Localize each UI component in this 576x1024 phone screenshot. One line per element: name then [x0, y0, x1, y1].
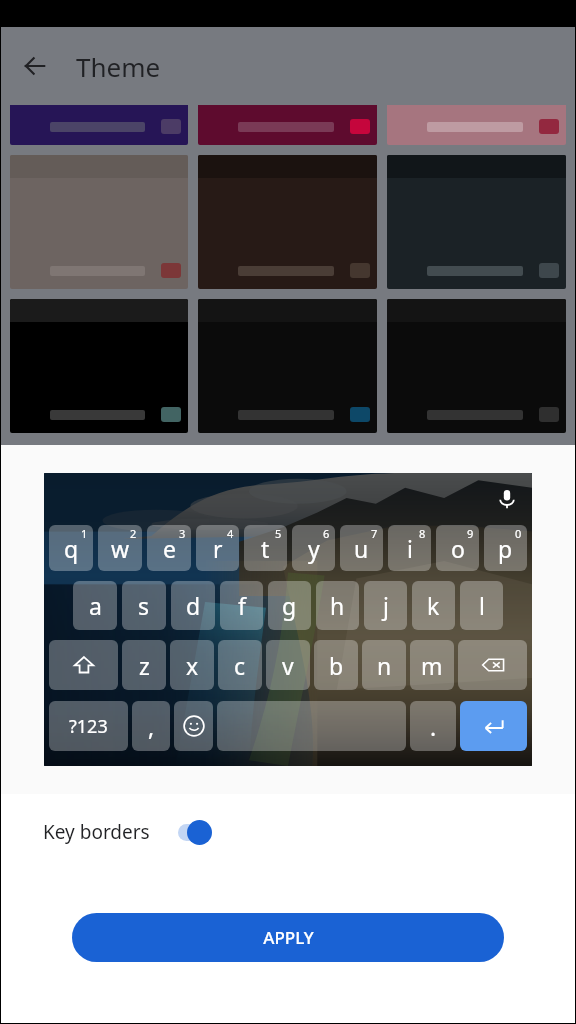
staticText: 7	[371, 526, 378, 541]
staticText: t	[261, 533, 270, 564]
staticText: 5	[275, 526, 282, 541]
button[interactable]: p	[484, 525, 527, 571]
staticText: 9	[467, 526, 474, 541]
button[interactable]: APPLY	[72, 913, 504, 962]
staticText: 8	[419, 526, 426, 541]
button[interactable]: Back	[11, 42, 59, 90]
button[interactable]: Shift	[49, 640, 118, 690]
button[interactable]: v	[266, 640, 310, 690]
button[interactable]: y	[292, 525, 335, 571]
staticText: i	[407, 533, 413, 564]
button[interactable]: Backspace	[458, 640, 527, 690]
button[interactable]	[387, 299, 566, 433]
staticText: f	[238, 590, 246, 621]
button[interactable]: q	[49, 525, 93, 571]
staticText: j	[383, 590, 389, 621]
staticText: 1	[81, 526, 88, 541]
button[interactable]: e	[147, 525, 191, 571]
staticText: o	[451, 533, 465, 564]
button[interactable]: g	[268, 581, 311, 630]
button[interactable]	[198, 27, 377, 145]
button[interactable]	[387, 155, 566, 289]
staticText: .	[430, 711, 437, 742]
button[interactable]: ?123	[49, 701, 128, 751]
staticText: APPLY	[263, 926, 314, 949]
staticText: Theme	[76, 49, 161, 84]
staticText: k	[427, 590, 440, 621]
staticText: 3	[179, 526, 186, 541]
staticText: h	[330, 590, 345, 621]
button[interactable]: z	[122, 640, 166, 690]
button[interactable]: i	[388, 525, 431, 571]
staticText: s	[138, 590, 150, 621]
button[interactable]: m	[410, 640, 454, 690]
staticText: u	[354, 533, 369, 564]
staticText: Key borders	[43, 819, 150, 845]
button[interactable]: ,	[132, 701, 170, 751]
staticText: w	[111, 533, 130, 564]
staticText: d	[186, 590, 201, 621]
staticText: g	[282, 590, 297, 621]
button[interactable]: n	[362, 640, 406, 690]
staticText: e	[163, 533, 176, 564]
staticText: a	[89, 590, 102, 621]
button[interactable]: b	[314, 640, 358, 690]
staticText: ?123	[69, 714, 108, 739]
button[interactable]: k	[412, 581, 455, 630]
button[interactable]: l	[460, 581, 503, 630]
button[interactable]	[10, 155, 188, 289]
button[interactable]: Voice input	[490, 482, 524, 516]
button[interactable]: w	[98, 525, 142, 571]
button[interactable]: r	[196, 525, 239, 571]
button[interactable]: Key borders	[1, 806, 575, 858]
staticText: l	[479, 590, 485, 621]
button[interactable]: h	[316, 581, 359, 630]
button[interactable]	[198, 299, 377, 433]
button[interactable]: a	[73, 581, 117, 630]
staticText: 2	[130, 526, 137, 541]
button[interactable]: x	[170, 640, 214, 690]
button[interactable]	[10, 299, 188, 433]
button[interactable]: d	[171, 581, 215, 630]
staticText: 0	[515, 526, 522, 541]
button[interactable]: u	[340, 525, 383, 571]
button[interactable]: Enter	[460, 701, 527, 751]
button[interactable]: j	[364, 581, 407, 630]
button[interactable]: t	[244, 525, 287, 571]
staticText: c	[234, 650, 246, 681]
staticText: x	[186, 650, 199, 681]
button[interactable]	[198, 155, 377, 289]
staticText: r	[213, 533, 223, 564]
button[interactable]: .	[410, 701, 456, 751]
staticText: b	[329, 650, 344, 681]
staticText: p	[498, 533, 513, 564]
button[interactable]: Emoji	[174, 701, 213, 751]
staticText: m	[421, 650, 443, 681]
staticText: q	[64, 533, 79, 564]
button[interactable]	[217, 701, 406, 751]
button[interactable]: o	[436, 525, 479, 571]
button[interactable]: f	[220, 581, 263, 630]
staticText: ,	[148, 711, 155, 742]
button[interactable]	[10, 27, 188, 145]
button[interactable]: c	[218, 640, 262, 690]
staticText: y	[308, 533, 320, 564]
button[interactable]	[387, 27, 566, 145]
staticText: 6	[323, 526, 330, 541]
staticText: z	[139, 650, 150, 681]
staticText: v	[282, 650, 294, 681]
staticText: 4	[227, 526, 234, 541]
staticText: n	[377, 650, 392, 681]
button[interactable]: s	[122, 581, 166, 630]
